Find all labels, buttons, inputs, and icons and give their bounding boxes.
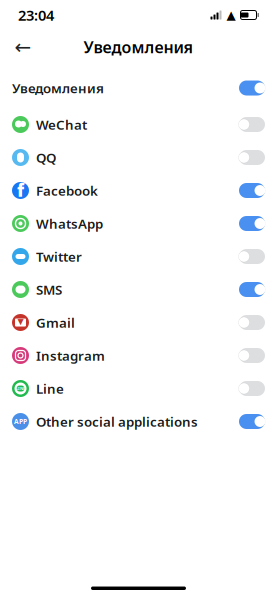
button[interactable]: f (0, 174, 277, 207)
staticText: Line (36, 380, 64, 397)
staticText: APP (14, 417, 27, 426)
staticText: Уведомления (12, 79, 104, 97)
button[interactable]: LINE (0, 372, 277, 405)
staticText: LINE (16, 386, 25, 391)
staticText: Facebook (36, 182, 98, 199)
staticText: SMS (36, 281, 62, 298)
staticText: WhatsApp (36, 215, 103, 232)
staticText: Instagram (36, 347, 105, 364)
staticText: QQ (36, 149, 56, 166)
staticText: Other social applications (36, 413, 198, 430)
button[interactable]: Уведомления (0, 74, 277, 102)
staticText: Уведомления (83, 36, 193, 58)
staticText: ← (14, 36, 31, 58)
button[interactable]: APP (0, 405, 277, 438)
button[interactable]: Twitter (0, 240, 277, 273)
staticText: Gmail (36, 314, 75, 331)
button[interactable]: SMS (0, 273, 277, 306)
button[interactable]: Instagram (0, 339, 277, 372)
staticText: ▲ (226, 8, 235, 22)
button[interactable]: QQ (0, 141, 277, 174)
button[interactable]: WhatsApp (0, 207, 277, 240)
staticText: f (17, 178, 24, 201)
button[interactable]: WeChat (0, 108, 277, 141)
staticText: Twitter (36, 248, 82, 265)
button[interactable]: Back (8, 33, 38, 61)
staticText: WeChat (36, 116, 87, 133)
staticText: 23:04 (18, 5, 54, 25)
staticText: ▼ (17, 317, 23, 326)
button[interactable]: ▼ (0, 306, 277, 339)
